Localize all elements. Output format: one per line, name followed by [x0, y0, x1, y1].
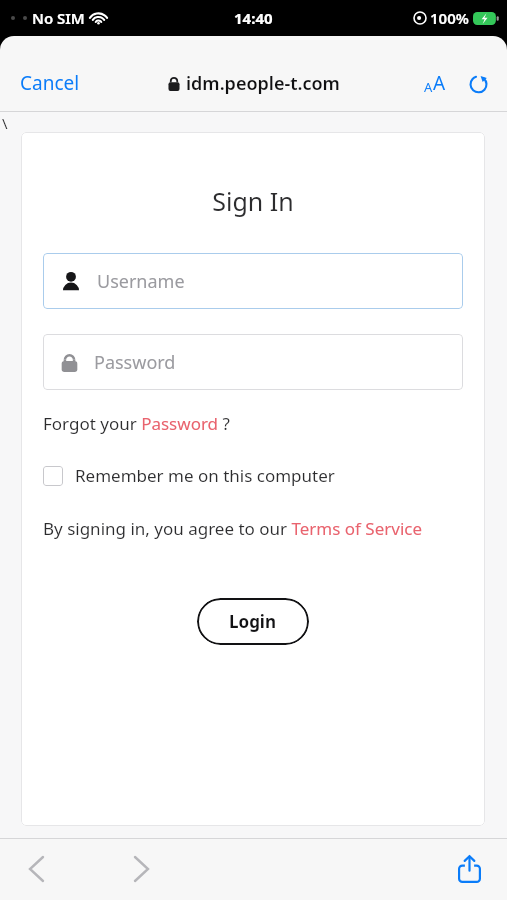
- staticText: Password: [94, 350, 176, 375]
- button[interactable]: Text size options: [420, 64, 450, 102]
- staticText: idm.people-t.com: [186, 71, 340, 96]
- staticText: 14:40: [234, 8, 273, 28]
- button[interactable]: By signing in, you agree to our Terms of…: [43, 517, 423, 540]
- staticText: Login: [229, 610, 277, 633]
- button[interactable]: Reload page: [464, 69, 493, 98]
- button[interactable]: Remember me on this computer: [43, 462, 335, 489]
- button[interactable]: Username: [43, 253, 463, 309]
- staticText: A: [424, 78, 433, 96]
- staticText: Username: [97, 269, 185, 294]
- staticText: Remember me on this computer: [75, 464, 335, 487]
- button[interactable]: Forward: [125, 847, 158, 891]
- staticText: Sign In: [43, 184, 463, 218]
- button[interactable]: Password: [43, 334, 463, 390]
- button[interactable]: Forgot your Password ?: [43, 412, 230, 435]
- staticText: A: [433, 70, 446, 96]
- button[interactable]: Login: [197, 598, 309, 645]
- button[interactable]: idm.people-t.com: [164, 67, 344, 100]
- button[interactable]: Cancel: [0, 64, 90, 102]
- staticText: No SIM: [32, 8, 85, 28]
- button[interactable]: Back: [20, 847, 53, 891]
- button[interactable]: Share: [452, 849, 487, 889]
- staticText: 100%: [430, 8, 469, 28]
- staticText: \: [2, 113, 8, 133]
